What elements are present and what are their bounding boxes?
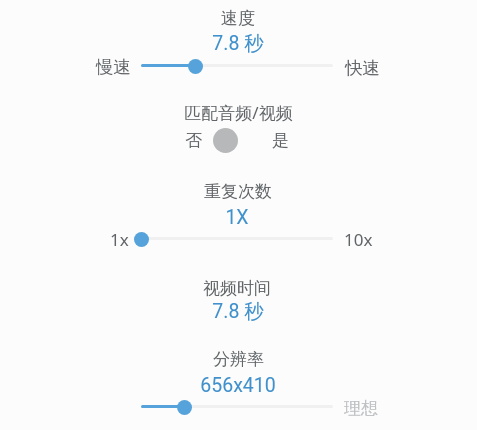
staticText: 视频时间 [203,278,271,299]
button[interactable]: Repeat count slider [130,227,344,251]
staticText: 分辨率 [213,349,264,370]
button[interactable]: Speed slider [130,54,344,78]
button[interactable]: Match audio to video toggle [213,128,238,153]
button[interactable]: Resolution slider [130,395,344,419]
staticText: 否 [185,130,202,151]
staticText: 1x [110,228,129,251]
staticText: 理想 [344,398,378,419]
staticText: 7.8 秒 [212,299,264,324]
staticText: 重复次数 [204,181,272,202]
staticText: 是 [272,130,289,151]
staticText: 1X [225,206,249,229]
staticText: 10x [344,228,373,251]
staticText: 速度 [221,8,255,29]
staticText: 匹配音频/视频 [184,101,293,124]
staticText: 快速 [345,57,380,79]
staticText: 慢速 [96,56,131,78]
staticText: 656x410 [200,374,276,397]
staticText: 7.8 秒 [212,31,264,56]
